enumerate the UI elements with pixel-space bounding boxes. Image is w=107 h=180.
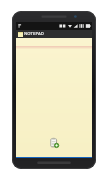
button[interactable]: NOTEPAD [16,30,92,38]
staticText: NOTEPAD [24,31,44,37]
button[interactable]: Add note [16,38,92,158]
button[interactable]: Add note [49,137,60,148]
